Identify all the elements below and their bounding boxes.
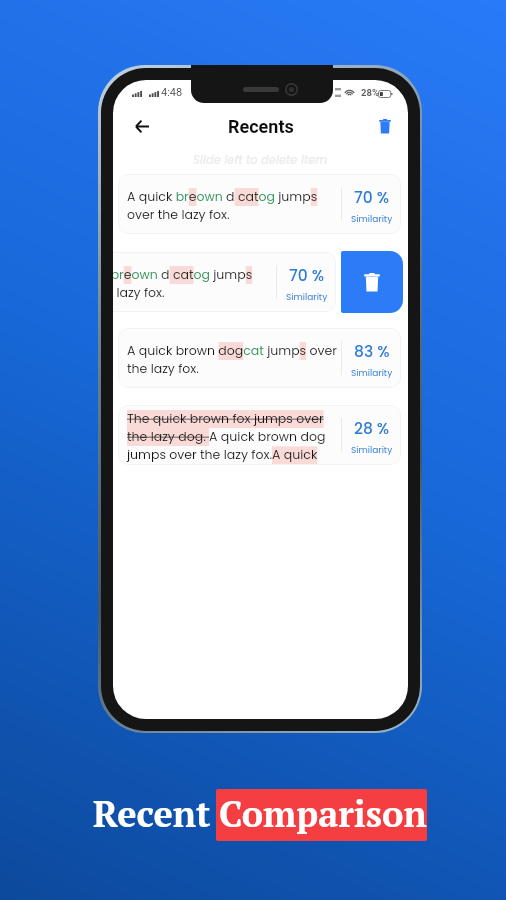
staticText: A quick breown d catog jumps over the la… xyxy=(113,266,277,302)
staticText: Similarity xyxy=(351,444,393,457)
button[interactable]: A quick breown d catog jumps over the la… xyxy=(113,252,336,312)
button[interactable]: Delete all xyxy=(370,111,400,141)
button[interactable]: A quick breown d catog jumps over the la… xyxy=(118,174,401,234)
staticText: Recents xyxy=(228,116,294,137)
staticText: A quick brown dogcat jumps over the lazy… xyxy=(127,342,342,378)
button[interactable]: Back xyxy=(126,110,158,142)
button[interactable]: A quick brown dogcat jumps over the lazy… xyxy=(118,328,401,388)
button[interactable]: Delete xyxy=(341,251,403,313)
staticText: Similarity xyxy=(286,291,328,304)
staticText: Similarity xyxy=(351,213,393,226)
staticText: Comparison xyxy=(219,790,427,838)
staticText: Slide left to delete item xyxy=(193,152,328,168)
staticText: 28 % xyxy=(354,418,390,440)
staticText: A quick breown d catog jumps over the la… xyxy=(127,188,342,224)
staticText: Similarity xyxy=(351,367,393,380)
staticText: 83 % xyxy=(354,341,390,363)
staticText: 28% xyxy=(361,87,379,98)
staticText: 70 % xyxy=(354,187,389,209)
staticText: 70 % xyxy=(289,265,324,287)
staticText: Recent xyxy=(93,790,211,838)
staticText: 4:48 xyxy=(161,86,183,99)
button[interactable]: The quick brown fox jumps over the lazy … xyxy=(118,405,401,465)
staticText: The quick brown fox jumps over the lazy … xyxy=(127,410,342,464)
